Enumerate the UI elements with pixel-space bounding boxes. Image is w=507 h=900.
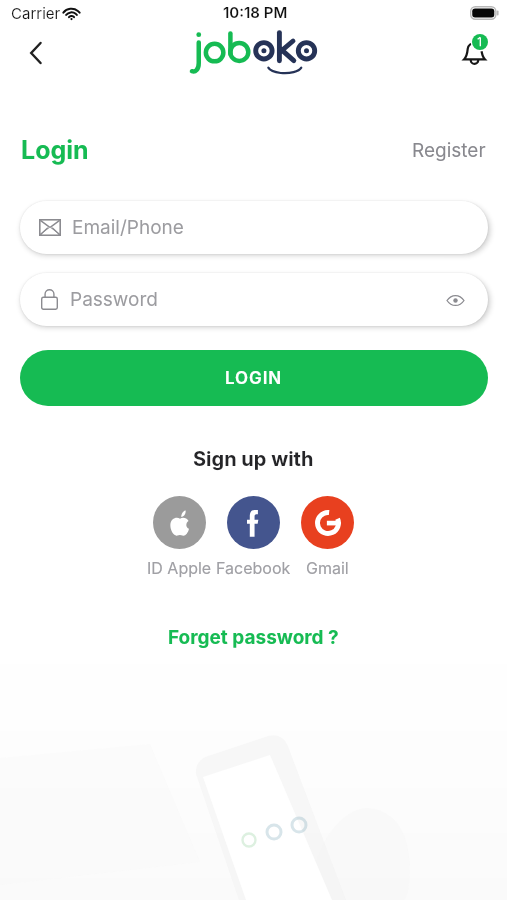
staticText: Register [412, 139, 486, 162]
staticText: Password [70, 288, 158, 311]
staticText: Login [21, 135, 89, 165]
button[interactable]: Login [21, 135, 89, 165]
staticText: ID Apple [147, 558, 212, 577]
button[interactable]: Forget password ? [168, 626, 339, 649]
staticText: Gmail [306, 558, 349, 577]
staticText: Facebook [216, 558, 291, 577]
staticText: LOGIN [225, 368, 283, 389]
staticText: Carrier [11, 4, 61, 22]
button[interactable]: ID Apple [134, 496, 224, 577]
staticText: 10:18 PM [223, 3, 288, 21]
button[interactable]: Show password [442, 287, 468, 313]
staticText: Email/Phone [72, 216, 184, 239]
button[interactable]: Facebook [208, 496, 298, 577]
staticText: Sign up with [193, 447, 314, 471]
button[interactable]: Back [18, 35, 54, 71]
staticText: Forget password ? [168, 626, 339, 649]
button[interactable]: Password [20, 273, 488, 326]
button[interactable]: Notifications [456, 32, 492, 68]
button[interactable]: LOGIN [20, 350, 488, 406]
button[interactable]: Register [412, 139, 486, 162]
button[interactable]: Gmail [282, 496, 372, 577]
button[interactable]: Email/Phone [20, 201, 488, 254]
